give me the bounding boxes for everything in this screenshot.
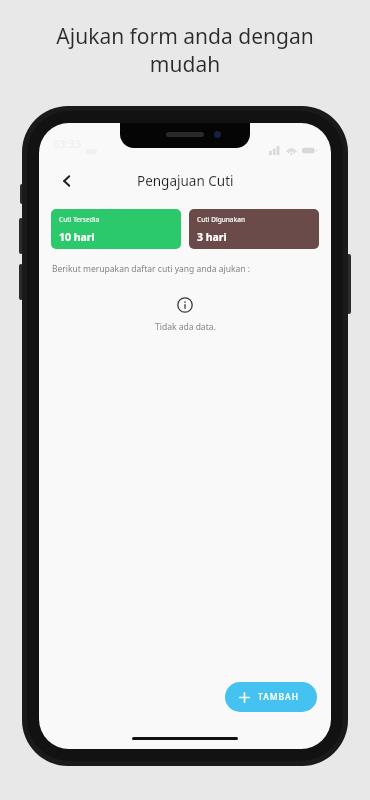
staticText: TAMBAH xyxy=(258,691,300,703)
staticText: Tidak ada data. xyxy=(155,321,216,333)
staticText: 03:33 xyxy=(53,136,82,151)
button[interactable]: Cuti Tersedia xyxy=(51,209,181,249)
staticText: 10 hari xyxy=(59,230,95,244)
staticText: 3 hari xyxy=(197,230,227,244)
staticText: Cuti Tersedia xyxy=(59,215,100,224)
staticText: Cuti Digunakan xyxy=(197,215,245,224)
staticText: Ajukan form anda dengan mudah xyxy=(24,22,346,78)
staticText: Berikut merupakan daftar cuti yang anda … xyxy=(52,263,250,275)
button[interactable]: TAMBAH xyxy=(225,682,317,712)
button[interactable]: Cuti Digunakan xyxy=(189,209,319,249)
button[interactable]: Back xyxy=(51,165,83,197)
staticText: Pengajuan Cuti xyxy=(137,172,234,190)
